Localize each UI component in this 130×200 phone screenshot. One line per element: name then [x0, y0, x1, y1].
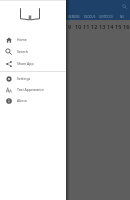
button[interactable]: Home [0, 34, 66, 45]
button[interactable]: EXODUS [82, 13, 98, 20]
staticText: 15 [115, 23, 122, 30]
staticText: Settings [17, 76, 31, 81]
staticText: NU [120, 15, 125, 19]
button[interactable]: Share App [0, 58, 66, 69]
button[interactable]: About [0, 95, 66, 106]
staticText: 11 [83, 23, 90, 30]
staticText: EXODUS [84, 15, 96, 19]
button[interactable]: LEVITICUS [98, 13, 114, 20]
button[interactable]: 10 [74, 22, 82, 31]
staticText: Text Appearance [17, 87, 44, 92]
button[interactable]: 9 [66, 22, 74, 31]
staticText: Home [17, 37, 27, 42]
staticText: 9 [68, 23, 72, 30]
button[interactable]: GENESIS [66, 13, 82, 20]
staticText: GENESIS [68, 15, 80, 19]
button[interactable]: Settings [0, 73, 66, 84]
staticText: LEVITICUS [99, 15, 113, 19]
staticText: 10 [75, 23, 82, 30]
staticText: 14 [107, 23, 114, 30]
button[interactable]: Search [119, 1, 130, 12]
staticText: About [17, 98, 27, 103]
button[interactable]: 13 [98, 22, 106, 31]
button[interactable]: Search [0, 46, 66, 57]
button[interactable]: 11 [82, 22, 90, 31]
staticText: Search [17, 49, 28, 54]
button[interactable]: Text Appearance [0, 84, 66, 95]
staticText: 13 [99, 23, 106, 30]
staticText: 12 [91, 23, 98, 30]
button[interactable]: NU [114, 13, 130, 20]
staticText: Share App [17, 61, 34, 66]
button[interactable]: 14 [106, 22, 114, 31]
staticText: 16 [123, 23, 130, 30]
button[interactable]: 15 [114, 22, 122, 31]
button[interactable]: 16 [122, 22, 130, 31]
button[interactable]: 12 [90, 22, 98, 31]
